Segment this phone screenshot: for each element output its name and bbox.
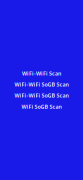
staticText: WiFi-WiFi SoGB Scan	[14, 92, 68, 99]
staticText: WiFi SoGB Scan	[21, 103, 61, 110]
staticText: WiFi-WiFi SoGB Scan	[14, 81, 68, 88]
staticText: WiFi-WiFi Scan	[22, 70, 61, 77]
